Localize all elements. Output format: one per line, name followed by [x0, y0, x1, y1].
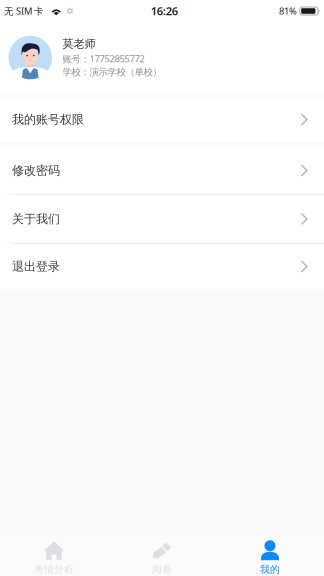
- staticText: 退出登录: [12, 259, 60, 274]
- button[interactable]: 我的账号权限: [0, 97, 324, 142]
- button[interactable]: 修改密码: [0, 147, 324, 194]
- staticText: 考情分析: [34, 563, 74, 576]
- staticText: 阅卷: [152, 563, 172, 576]
- staticText: 账号：17752855772: [62, 52, 144, 65]
- staticText: 81%: [279, 5, 297, 17]
- staticText: 关于我们: [12, 211, 60, 226]
- staticText: 16:26: [151, 3, 178, 19]
- staticText: 我的账号权限: [12, 112, 84, 127]
- staticText: 学校：演示学校（单校）: [62, 66, 161, 78]
- button[interactable]: 退出登录: [0, 244, 324, 289]
- staticText: 修改密码: [12, 163, 60, 178]
- button[interactable]: 关于我们: [0, 195, 324, 243]
- button[interactable]: 考情分析: [0, 532, 108, 576]
- staticText: 莫老师: [62, 37, 95, 51]
- staticText: 我的: [260, 563, 280, 576]
- button[interactable]: 阅卷: [108, 532, 216, 576]
- button[interactable]: 我的: [216, 532, 324, 576]
- staticText: 无 SIM 卡: [4, 5, 43, 17]
